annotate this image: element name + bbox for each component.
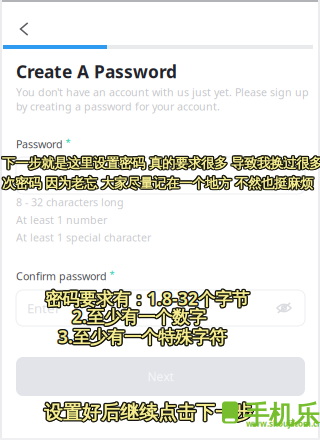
staticText: Confirm password [16,269,107,283]
staticText: 设置好后继续点击下一步 [43,400,252,423]
staticText: 设置好后继续点击下一步 [44,400,253,423]
staticText: 设置好后继续点击下一步 [44,401,253,424]
staticText: 密码要求有：1.8-32个字节 [45,286,249,309]
staticText: 密码要求有：1.8-32个字节 [45,287,249,310]
staticText: 下一步就是这里设置密码 真的要求很多 导致我换过很多 [3,154,320,170]
staticText: 3.至少有一个特殊字符 [58,325,226,348]
staticText: 设置好后继续点击下一步 [45,400,254,423]
staticText: 2.至少有一个数字 [73,305,207,328]
staticText: 设置好后继续点击下一步 [45,402,254,425]
staticText: 下一步就是这里设置密码 真的要求很多 导致我换过很多 [3,156,320,172]
staticText: 3.至少有一个特殊字符 [59,324,227,347]
button[interactable]: Enter [16,290,305,326]
staticText: 下一步就是这里设置密码 真的要求很多 导致我换过很多 [2,154,320,170]
staticText: 设置好后继续点击下一步 [43,401,252,424]
staticText: 下一步就是这里设置密码 真的要求很多 导致我换过很多 [1,155,320,171]
staticText: 下一步就是这里设置密码 真的要求很多 导致我换过很多 [2,156,320,173]
staticText: 3.至少有一个特殊字符 [58,324,226,347]
staticText: Enter [27,299,61,317]
staticText: 下一步就是这里设置密码 真的要求很多 导致我换过很多 [3,155,320,171]
staticText: * [65,136,70,148]
staticText: 密码要求有：1.8-32个字节 [46,286,250,309]
staticText: 次密码 因为老忘 大家尽量记在一个地方 不然也挺麻烦 [3,174,314,190]
staticText: 3.至少有一个特殊字符 [59,326,227,349]
staticText: 2.至少有一个数字 [71,305,205,328]
staticText: 密码要求有：1.8-32个字节 [46,288,250,311]
staticText: You don't have an account with us just y… [16,85,309,99]
staticText: 2.至少有一个数字 [73,306,207,329]
staticText: 设置好后继续点击下一步 [45,401,254,424]
staticText: Password [16,137,63,151]
staticText: Next [147,368,173,384]
staticText: 下一步就是这里设置密码 真的要求很多 导致我换过很多 [2,155,320,171]
staticText: 2.至少有一个数字 [72,306,206,329]
staticText: 次密码 因为老忘 大家尽量记在一个地方 不然也挺麻烦 [1,174,312,190]
staticText: www.shouji.com.cn [246,418,320,429]
staticText: 密码要求有：1.8-32个字节 [45,288,249,311]
staticText: 手机乐园 [244,399,320,430]
staticText: At least 1 number [16,213,107,227]
staticText: 次密码 因为老忘 大家尽量记在一个地方 不然也挺麻烦 [2,174,313,190]
staticText: 8 - 32 characters long [16,195,124,209]
staticText: 下一步就是这里设置密码 真的要求很多 导致我换过很多 [1,156,320,172]
staticText: At least 1 special character [16,230,151,244]
staticText: 3.至少有一个特殊字符 [57,324,225,347]
staticText: 密码要求有：1.8-32个字节 [44,286,248,309]
staticText: 3.至少有一个特殊字符 [58,326,226,349]
staticText: 次密码 因为老忘 大家尽量记在一个地方 不然也挺麻烦 [2,176,313,193]
staticText: 次密码 因为老忘 大家尽量记在一个地方 不然也挺麻烦 [1,175,312,191]
staticText: 2.至少有一个数字 [73,304,207,327]
staticText: 密码要求有：1.8-32个字节 [46,287,250,310]
staticText: 次密码 因为老忘 大家尽量记在一个地方 不然也挺麻烦 [1,176,312,192]
staticText: 3.至少有一个特殊字符 [57,326,225,349]
staticText: 2.至少有一个数字 [71,304,205,327]
staticText: Create A Password [16,60,177,83]
staticText: 2.至少有一个数字 [71,306,205,329]
staticText: 次密码 因为老忘 大家尽量记在一个地方 不然也挺麻烦 [2,175,313,191]
staticText: by creating a password for your account. [16,99,220,113]
staticText: 次密码 因为老忘 大家尽量记在一个地方 不然也挺麻烦 [3,175,314,191]
staticText: 2.至少有一个数字 [72,304,206,327]
staticText: 下一步就是这里设置密码 真的要求很多 导致我换过很多 [1,154,320,170]
staticText: 设置好后继续点击下一步 [44,402,253,425]
staticText: 密码要求有：1.8-32个字节 [44,287,248,310]
staticText: * [109,268,114,280]
staticText: 3.至少有一个特殊字符 [59,325,227,348]
staticText: 设置好后继续点击下一步 [43,402,252,425]
staticText: 密码要求有：1.8-32个字节 [44,288,248,311]
staticText: 2.至少有一个数字 [72,305,206,328]
staticText: 次密码 因为老忘 大家尽量记在一个地方 不然也挺麻烦 [3,176,314,192]
button[interactable]: Back [4,8,44,50]
staticText: 3.至少有一个特殊字符 [57,325,225,348]
